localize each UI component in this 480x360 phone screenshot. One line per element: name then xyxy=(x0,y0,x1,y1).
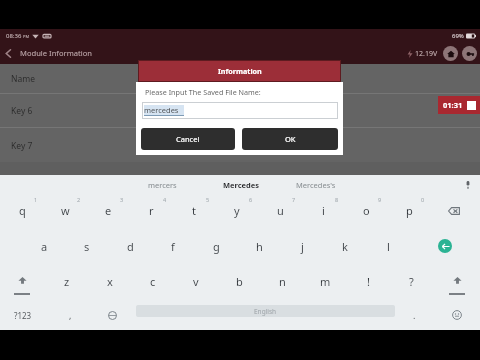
staticText: Cancel xyxy=(176,134,200,144)
button[interactable]: Mercedes xyxy=(207,175,275,195)
staticText: s xyxy=(84,239,90,254)
staticText: z xyxy=(64,274,70,289)
button[interactable]: Change language xyxy=(92,300,132,330)
staticText: j xyxy=(301,239,304,254)
staticText: Module Information xyxy=(20,48,93,58)
staticText: Information xyxy=(218,66,262,76)
button[interactable]: Home xyxy=(443,46,458,61)
staticText: 6 xyxy=(249,196,253,203)
button[interactable]: r xyxy=(130,193,172,228)
staticText: g xyxy=(213,239,220,254)
button[interactable]: i xyxy=(302,193,344,228)
staticText: t xyxy=(192,203,196,218)
staticText: r xyxy=(149,203,154,218)
staticText: Key 6 xyxy=(11,105,33,117)
staticText: 7 xyxy=(292,196,296,203)
staticText: . xyxy=(413,309,416,321)
button[interactable]: o xyxy=(345,193,387,228)
button[interactable]: v xyxy=(175,264,217,299)
button[interactable]: . xyxy=(394,300,434,330)
staticText: OK xyxy=(285,134,296,144)
button[interactable]: e xyxy=(87,193,129,228)
button[interactable]: Name xyxy=(0,64,480,94)
button[interactable]: g xyxy=(195,229,237,264)
staticText: 4 xyxy=(163,196,167,203)
staticText: y xyxy=(234,203,240,218)
staticText: ?123 xyxy=(14,310,32,321)
staticText: h xyxy=(256,239,263,254)
button[interactable]: ? xyxy=(390,264,432,299)
button[interactable]: Emoji xyxy=(437,300,477,330)
staticText: n xyxy=(279,274,286,289)
button[interactable]: j xyxy=(281,229,323,264)
staticText: 0 xyxy=(421,196,425,203)
button[interactable]: Key 7 xyxy=(0,128,480,163)
staticText: d xyxy=(127,239,134,254)
button[interactable]: w xyxy=(44,193,86,228)
staticText: u xyxy=(277,203,284,218)
button[interactable]: z xyxy=(46,264,88,299)
button[interactable]: Recording xyxy=(438,96,480,114)
button[interactable]: s xyxy=(66,229,108,264)
button[interactable]: Key 6 xyxy=(0,94,480,128)
staticText: 5 xyxy=(206,196,210,203)
staticText: x xyxy=(107,274,113,289)
staticText: , xyxy=(69,309,72,321)
button[interactable]: mercedes xyxy=(142,102,338,119)
staticText: mercers xyxy=(148,180,177,190)
button[interactable]: Enter xyxy=(424,228,466,263)
staticText: k xyxy=(342,239,348,254)
button[interactable]: Shift xyxy=(1,264,43,299)
button[interactable]: n xyxy=(261,264,303,299)
button[interactable]: d xyxy=(109,229,151,264)
staticText: 9 xyxy=(378,196,382,203)
button[interactable]: Voice input xyxy=(462,179,474,191)
button[interactable]: Back xyxy=(0,42,99,64)
staticText: v xyxy=(193,274,199,289)
button[interactable]: b xyxy=(218,264,260,299)
staticText: q xyxy=(19,203,26,218)
staticText: ? xyxy=(409,274,414,289)
staticText: w xyxy=(61,203,70,218)
staticText: p xyxy=(406,203,413,218)
button[interactable]: Shift xyxy=(436,264,478,299)
button[interactable]: English xyxy=(136,305,395,317)
button[interactable]: Backspace xyxy=(433,193,475,228)
staticText: 69% xyxy=(452,32,464,40)
staticText: 1 xyxy=(34,196,38,203)
button[interactable]: l xyxy=(367,229,409,264)
button[interactable]: ! xyxy=(347,264,389,299)
button[interactable]: m xyxy=(304,264,346,299)
button[interactable]: p xyxy=(388,193,430,228)
staticText: 3 xyxy=(120,196,124,203)
staticText: a xyxy=(41,239,48,254)
button[interactable]: Cancel xyxy=(141,128,235,150)
button[interactable]: Menu xyxy=(462,46,477,61)
staticText: 08:36 xyxy=(6,32,22,40)
button[interactable]: OK xyxy=(242,128,338,150)
button[interactable]: k xyxy=(324,229,366,264)
button[interactable]: u xyxy=(259,193,301,228)
staticText: Name xyxy=(11,73,35,85)
button[interactable]: x xyxy=(89,264,131,299)
staticText: m xyxy=(320,274,331,289)
button[interactable]: ?123 xyxy=(3,300,43,330)
staticText: 2 xyxy=(77,196,81,203)
button[interactable]: a xyxy=(23,229,65,264)
staticText: o xyxy=(363,203,370,218)
button[interactable]: q xyxy=(1,193,43,228)
staticText: mercedes xyxy=(144,105,179,115)
button[interactable]: y xyxy=(216,193,258,228)
button[interactable]: , xyxy=(50,300,90,330)
staticText: Mercedes xyxy=(223,180,260,190)
staticText: Key 7 xyxy=(11,140,33,152)
staticText: b xyxy=(236,274,243,289)
staticText: English xyxy=(254,307,277,316)
button[interactable]: c xyxy=(132,264,174,299)
button[interactable]: t xyxy=(173,193,215,228)
button[interactable]: mercers xyxy=(129,175,196,195)
button[interactable]: h xyxy=(238,229,280,264)
staticText: l xyxy=(387,239,390,254)
button[interactable]: Mercedes's xyxy=(281,175,351,195)
button[interactable]: f xyxy=(152,229,194,264)
